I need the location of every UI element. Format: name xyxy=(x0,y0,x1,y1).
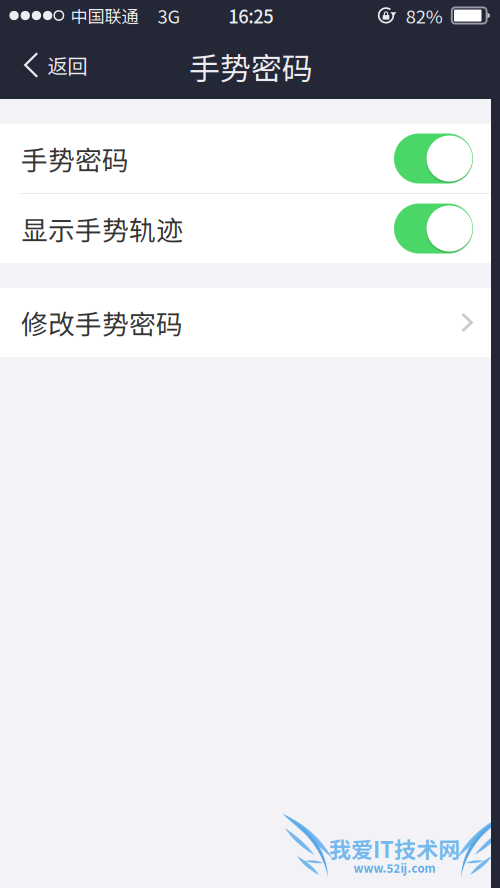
staticText: 82% xyxy=(406,2,443,29)
staticText: 返回 xyxy=(47,50,87,80)
staticText: 16:25 xyxy=(228,2,273,29)
staticText: 中国联通 xyxy=(70,3,138,28)
staticText: 显示手势轨迹 xyxy=(21,209,183,248)
staticText: 我爱IT技术网 xyxy=(329,832,460,864)
staticText: www.52ij.com xyxy=(353,859,435,876)
button[interactable]: 修改手势密码 xyxy=(0,288,491,357)
staticText: 修改手势密码 xyxy=(21,303,183,342)
staticText: 手势密码 xyxy=(21,139,129,178)
staticText: 手势密码 xyxy=(189,44,313,89)
button[interactable]: 手势密码 xyxy=(0,124,491,193)
button[interactable]: 返回 xyxy=(0,31,103,99)
button[interactable]: 显示手势轨迹 xyxy=(0,194,491,263)
staticText: 3G xyxy=(157,2,180,29)
